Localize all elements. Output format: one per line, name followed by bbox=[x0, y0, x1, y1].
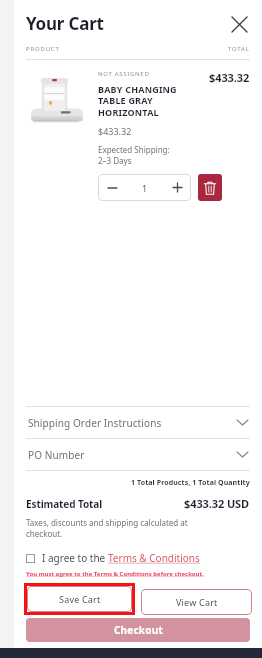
staticText: $433.32 bbox=[209, 70, 250, 85]
staticText: Save Cart bbox=[59, 593, 101, 605]
staticText: Shipping Order Instructions bbox=[28, 416, 162, 430]
staticText: Estimated Total bbox=[26, 497, 103, 511]
staticText: Taxes, discounts and shipping calculated… bbox=[26, 517, 188, 540]
button[interactable]: Close cart bbox=[228, 13, 250, 35]
button[interactable]: Checkout bbox=[26, 618, 250, 642]
staticText: 1 Total Products, 1 Total Quantity bbox=[131, 478, 250, 488]
button[interactable]: Decrease quantity bbox=[98, 174, 126, 201]
staticText: Terms & Conditions bbox=[108, 551, 200, 565]
button[interactable]: Shipping Order Instructions bbox=[26, 407, 250, 438]
button[interactable]: Increase quantity bbox=[163, 174, 191, 201]
staticText: $433.32 bbox=[98, 125, 132, 137]
button[interactable]: View Cart bbox=[141, 589, 252, 615]
staticText: Checkout bbox=[114, 623, 163, 637]
button[interactable]: BABY CHANGING TABLE GRAY HORIZONTAL bbox=[98, 83, 177, 119]
staticText: Your Cart bbox=[26, 12, 104, 35]
button[interactable]: Remove item bbox=[198, 174, 222, 201]
staticText: NOT ASSIGNED bbox=[98, 70, 150, 78]
staticText: I agree to the bbox=[42, 551, 108, 565]
staticText: 1 bbox=[142, 182, 148, 194]
staticText: TOTAL bbox=[228, 45, 250, 53]
staticText: PO Number bbox=[28, 448, 85, 462]
staticText: 2–3 Days bbox=[98, 155, 132, 166]
staticText: Expected Shipping: bbox=[98, 144, 170, 155]
button[interactable]: Save Cart bbox=[27, 586, 132, 612]
button[interactable]: PO Number bbox=[26, 439, 250, 470]
staticText: PRODUCT bbox=[26, 45, 60, 53]
staticText: $433.32 USD bbox=[184, 496, 250, 511]
button[interactable]: I agree to the bbox=[26, 551, 250, 565]
staticText: View Cart bbox=[176, 596, 218, 608]
staticText: You must agree to the Terms & Conditions… bbox=[26, 570, 204, 578]
